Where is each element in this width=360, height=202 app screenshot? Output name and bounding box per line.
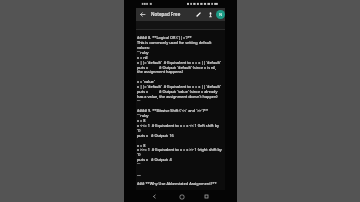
button[interactable]: Back <box>150 192 159 201</box>
button[interactable]: Recent apps <box>202 192 211 201</box>
staticText: 1) <box>137 128 141 133</box>
staticText: x = 'value' <box>137 79 155 84</box>
staticText: x = 8 <box>137 143 146 148</box>
staticText: puts x # Output: 'default' (since x is n… <box>137 65 217 70</box>
staticText: ```ruby <box>137 50 149 55</box>
staticText: N <box>219 12 223 18</box>
staticText: x = nil <box>137 55 148 60</box>
staticText: #### 8. **Logical OR (`||=`)** <box>137 35 192 40</box>
staticText: ``` <box>137 99 141 104</box>
staticText: has a value, the assignment doesn't happ… <box>137 94 218 99</box>
button[interactable]: Account <box>216 10 225 19</box>
staticText: puts x # Output: 16 <box>137 133 174 138</box>
staticText: x >>= 1 # Equivalent to x = x >> 1 (righ… <box>137 147 222 152</box>
staticText: ### **Why Use Abbreviated Assignment?** <box>137 181 217 186</box>
staticText: Notepad Free <box>151 11 181 17</box>
staticText: 1) <box>137 152 141 157</box>
staticText: #### 9. **Bitwise Shift (`<<` and `>>`)*… <box>137 108 209 113</box>
staticText: puts x # Output: 'value' (since x alread… <box>137 89 218 94</box>
staticText: the assignment happens) <box>137 69 183 74</box>
staticText: --- <box>137 172 141 177</box>
staticText: x ||= 'default' # Equivalent to x = x ||… <box>137 84 221 89</box>
staticText: puts x # Output: 4 <box>137 157 172 162</box>
button[interactable]: Back <box>138 10 147 19</box>
staticText: ```ruby <box>137 113 149 118</box>
button[interactable]: Voice input <box>206 10 215 19</box>
staticText: ``` <box>137 162 141 167</box>
staticText: values: <box>137 45 150 50</box>
staticText: x <<= 1 # Equivalent to x = x << 1 (left… <box>137 123 219 128</box>
button[interactable]: Home <box>177 192 186 201</box>
staticText: This is commonly used for setting defaul… <box>137 40 212 45</box>
button[interactable]: Edit <box>194 10 203 19</box>
staticText: x ||= 'default' # Equivalent to x = x ||… <box>137 60 221 65</box>
staticText: x = 8 <box>137 118 146 123</box>
